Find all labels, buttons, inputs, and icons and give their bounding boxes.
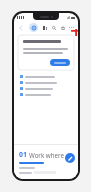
button[interactable]: More options xyxy=(68,24,75,31)
button[interactable] xyxy=(20,75,72,78)
button[interactable] xyxy=(50,59,70,66)
button[interactable] xyxy=(20,87,72,90)
staticText: 01 xyxy=(19,150,27,159)
button[interactable]: Text size xyxy=(41,24,48,31)
button[interactable]: Back xyxy=(17,24,24,31)
button[interactable]: Search xyxy=(50,24,57,31)
button[interactable] xyxy=(20,93,72,96)
button[interactable]: Edit xyxy=(65,153,75,163)
button[interactable]: Liquid mode xyxy=(29,23,38,32)
button[interactable]: Bookmarks xyxy=(59,24,66,31)
staticText: Work where you want xyxy=(29,151,73,159)
button[interactable] xyxy=(20,81,72,84)
